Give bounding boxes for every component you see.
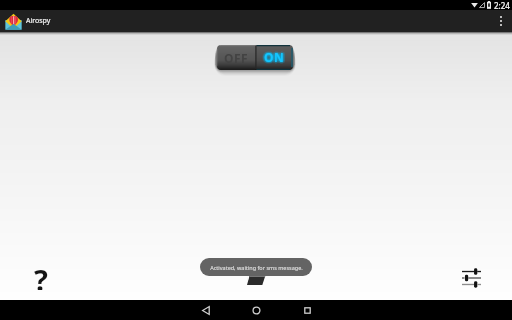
staticText: OFF [224,50,249,66]
staticText: ON [264,50,285,66]
staticText: ON [266,50,287,66]
staticText: ON [262,48,283,64]
staticText: ON [264,48,285,64]
button[interactable]: OFF [217,41,301,75]
button[interactable]: Home [231,300,282,320]
staticText: ON [265,49,286,65]
staticText: ON [264,49,285,65]
staticText: ON [265,50,286,66]
button[interactable]: Back [180,300,231,320]
staticText: ON [263,49,284,65]
button[interactable]: Recents [282,300,333,320]
staticText: 2:24 [494,0,510,10]
staticText: ? [34,260,48,290]
staticText: ON [264,47,285,63]
staticText: Activated, waiting for sms message. [210,264,303,271]
staticText: ON [262,50,283,66]
staticText: ON [263,48,284,64]
staticText: ON [262,49,283,65]
button[interactable]: More options [490,10,512,32]
staticText: ON [266,49,287,65]
staticText: Airospy [26,16,51,26]
staticText: ON [264,51,285,67]
staticText: ON [266,48,287,64]
button[interactable]: Settings [457,264,485,292]
staticText: ON [263,50,284,66]
button[interactable]: Help [26,260,56,290]
staticText: ON [265,48,286,64]
